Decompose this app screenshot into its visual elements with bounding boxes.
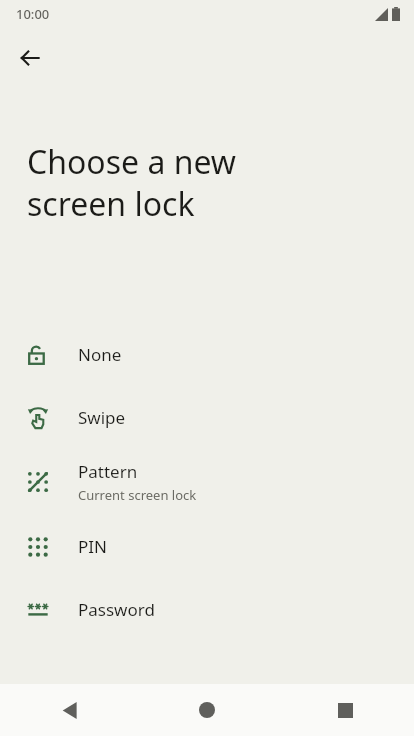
staticText: Swipe xyxy=(78,406,126,429)
button[interactable]: Swipe xyxy=(0,386,414,449)
staticText: PIN xyxy=(78,535,107,558)
button[interactable]: Recent apps xyxy=(276,684,414,736)
button[interactable]: PIN xyxy=(0,515,414,578)
staticText: Current screen lock xyxy=(78,486,197,504)
staticText: None xyxy=(78,343,122,366)
button[interactable]: Back xyxy=(0,684,138,736)
button[interactable]: Pattern xyxy=(0,449,414,515)
staticText: Password xyxy=(78,598,155,621)
button[interactable]: Back xyxy=(8,36,52,80)
staticText: 10:00 xyxy=(16,5,50,23)
button[interactable]: None xyxy=(0,323,414,386)
staticText: Choose a new screen lock xyxy=(27,140,237,225)
button[interactable]: Home xyxy=(138,684,276,736)
button[interactable]: Password xyxy=(0,578,414,641)
staticText: Pattern xyxy=(78,460,138,483)
